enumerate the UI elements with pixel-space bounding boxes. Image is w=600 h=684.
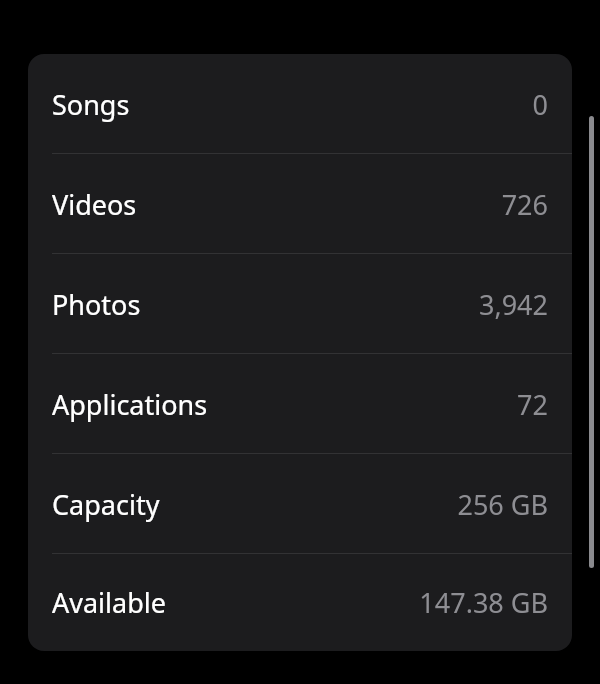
staticText: Songs <box>52 86 130 123</box>
staticText: 72 <box>517 386 548 423</box>
staticText: Applications <box>52 386 208 423</box>
button[interactable]: Videos <box>28 154 572 254</box>
staticText: Capacity <box>52 486 160 523</box>
staticText: Photos <box>52 286 141 323</box>
button[interactable]: Applications <box>28 354 572 454</box>
staticText: 3,942 <box>478 286 548 323</box>
other: Scroll position indicator <box>589 116 594 568</box>
staticText: Available <box>52 584 166 621</box>
button[interactable]: Capacity <box>28 454 572 554</box>
button[interactable]: Songs <box>28 54 572 154</box>
staticText: Videos <box>52 186 137 223</box>
button[interactable]: Available <box>28 554 572 651</box>
staticText: 256 GB <box>457 486 548 523</box>
staticText: 726 <box>501 186 548 223</box>
button[interactable]: Photos <box>28 254 572 354</box>
staticText: 147.38 GB <box>419 584 548 621</box>
staticText: 0 <box>532 86 548 123</box>
